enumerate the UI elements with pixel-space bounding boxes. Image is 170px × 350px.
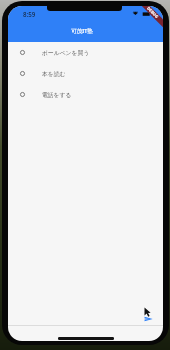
- staticText: 可茂IT塾: [71, 27, 93, 35]
- staticText: ボールペンを買う: [42, 49, 90, 56]
- button[interactable]: ボールペンを買う: [8, 42, 163, 63]
- button[interactable]: 電話をする: [8, 84, 163, 105]
- staticText: DEBUG: [146, 6, 159, 19]
- button[interactable]: Send: [144, 316, 153, 322]
- staticText: 8:59: [23, 10, 36, 18]
- button[interactable]: 本を読む: [8, 63, 163, 84]
- staticText: 本を読む: [42, 70, 66, 77]
- staticText: 電話をする: [42, 91, 72, 98]
